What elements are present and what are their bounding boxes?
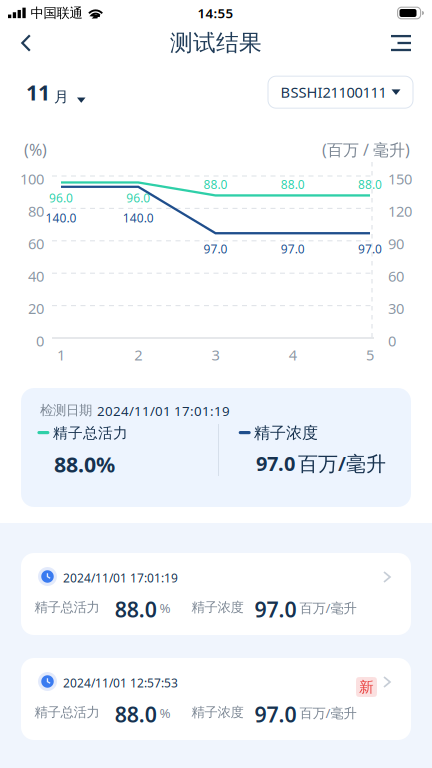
staticText: 40 <box>28 266 44 286</box>
button[interactable]: Back <box>0 23 47 63</box>
staticText: 97.0 <box>254 700 296 728</box>
staticText: 80 <box>28 201 44 221</box>
staticText: 60 <box>388 266 404 286</box>
staticText: (百万 / 毫升) <box>322 139 410 160</box>
staticText: 97.0 <box>358 241 382 257</box>
staticText: 检测日期 <box>40 402 92 418</box>
staticText: 90 <box>388 234 404 253</box>
staticText: 百万/毫升 <box>299 704 356 722</box>
staticText: (%) <box>24 139 47 160</box>
button[interactable]: 11 <box>26 73 85 111</box>
staticText: 88.0 <box>115 700 157 728</box>
staticText: 精子总活力 <box>34 704 99 720</box>
staticText: 96.0 <box>126 190 150 206</box>
staticText: 30 <box>388 299 404 318</box>
staticText: 100 <box>20 169 44 188</box>
staticText: 11 <box>26 78 50 106</box>
staticText: 150 <box>388 169 412 188</box>
staticText: 97.0 <box>256 450 295 477</box>
staticText: 百万/毫升 <box>298 450 386 477</box>
staticText: 2024/11/01 12:57:53 <box>63 675 178 691</box>
staticText: 88.0 <box>203 176 227 192</box>
staticText: 2 <box>134 345 142 364</box>
staticText: BSSHI21100111 <box>280 82 386 102</box>
staticText: 2024/11/01 17:01:19 <box>97 402 230 420</box>
staticText: 20 <box>28 299 44 318</box>
staticText: 88.0 <box>115 595 157 623</box>
staticText: 0 <box>36 331 44 350</box>
button[interactable]: Menu <box>375 23 432 63</box>
button[interactable]: 2024/11/01 17:01:19 <box>21 553 411 635</box>
staticText: % <box>159 599 170 617</box>
staticText: 测试结果 <box>170 29 262 57</box>
staticText: 中国联通 <box>31 5 83 21</box>
staticText: 精子浓度 <box>191 704 243 720</box>
staticText: 精子总活力 <box>34 599 99 615</box>
staticText: 月 <box>54 88 69 106</box>
staticText: 96.0 <box>49 190 73 206</box>
staticText: 2024/11/01 17:01:19 <box>63 570 178 586</box>
staticText: 120 <box>388 201 412 221</box>
staticText: 精子浓度 <box>254 423 318 443</box>
staticText: 百万/毫升 <box>299 599 356 617</box>
staticText: 新 <box>359 678 374 696</box>
staticText: 140.0 <box>123 210 154 226</box>
staticText: 精子浓度 <box>191 599 243 615</box>
staticText: 4 <box>289 345 297 364</box>
staticText: 1 <box>57 345 65 364</box>
staticText: 0 <box>388 331 396 350</box>
staticText: 3 <box>211 345 219 364</box>
staticText: % <box>159 704 170 722</box>
staticText: 88.0% <box>54 450 115 478</box>
staticText: 88.0 <box>281 176 305 192</box>
staticText: 14:55 <box>197 4 233 22</box>
staticText: 精子总活力 <box>53 424 128 442</box>
staticText: 140.0 <box>45 210 76 226</box>
staticText: 88.0 <box>358 176 382 192</box>
staticText: 97.0 <box>203 241 227 257</box>
staticText: 5 <box>366 345 374 364</box>
button[interactable]: BSSHI21100111 <box>268 76 413 108</box>
button[interactable]: 2024/11/01 12:57:53 <box>21 658 411 740</box>
staticText: 97.0 <box>281 241 305 257</box>
staticText: 97.0 <box>254 595 296 623</box>
staticText: 60 <box>28 234 44 253</box>
